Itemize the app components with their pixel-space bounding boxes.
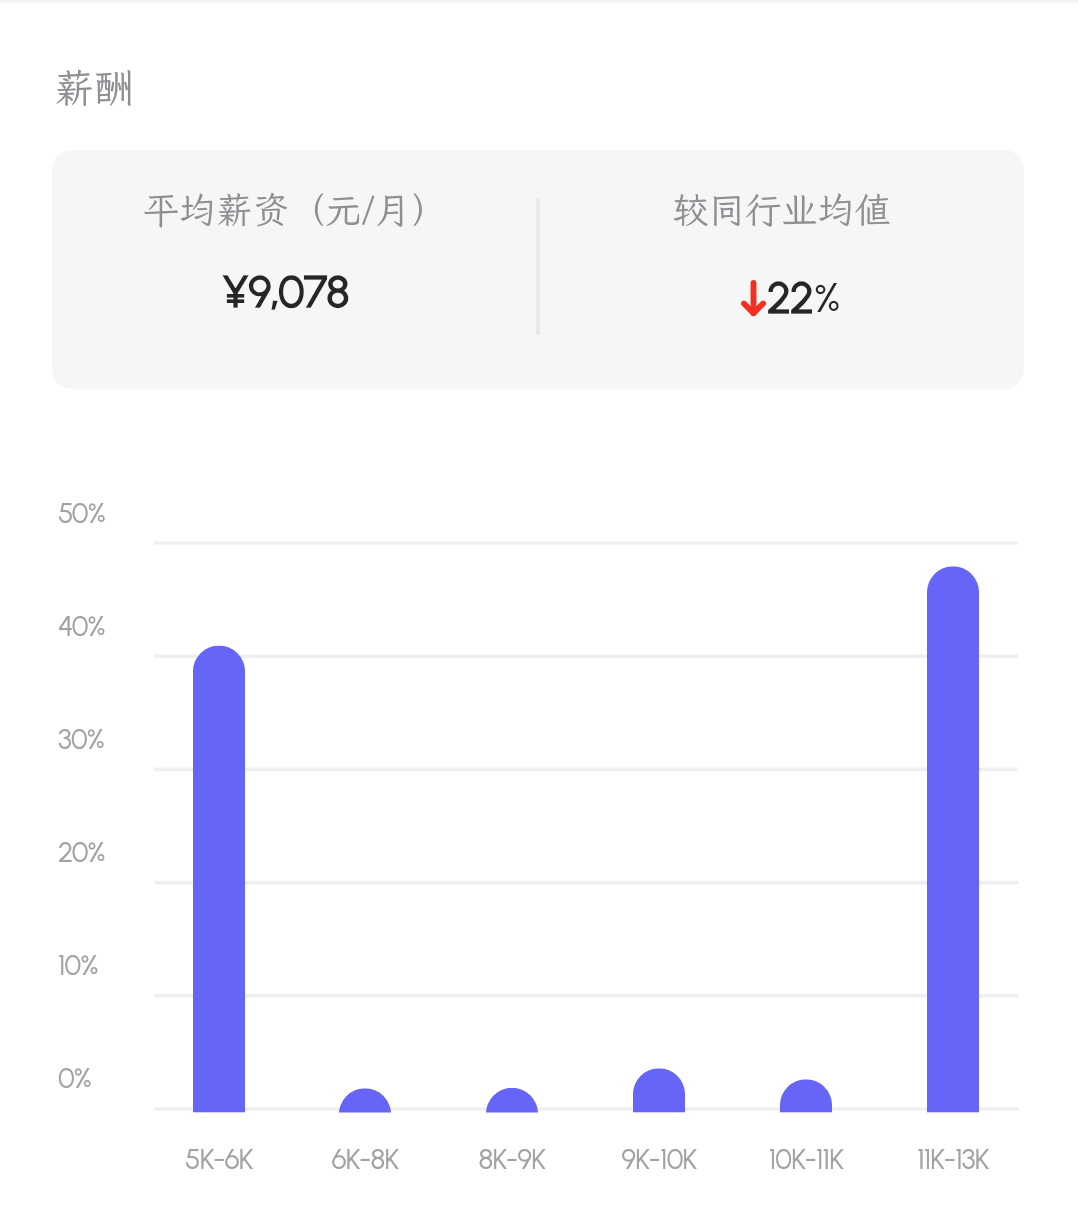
staticText: 40%: [58, 609, 105, 643]
staticText: 薪酬: [54, 61, 134, 114]
staticText: 10%: [58, 948, 98, 982]
other: Decrease: [741, 280, 766, 316]
staticText: 6K-8K: [270, 1142, 460, 1176]
staticText: 9K-10K: [564, 1142, 754, 1176]
staticText: 5K-6K: [124, 1142, 314, 1176]
staticText: 20%: [58, 835, 105, 869]
staticText: 11K-13K: [858, 1142, 1048, 1176]
staticText: %: [814, 273, 840, 322]
staticText: ¥9,078: [222, 265, 349, 318]
staticText: 较同行业均值: [672, 185, 891, 229]
staticText: 50%: [58, 496, 105, 530]
staticText: 10K-11K: [711, 1142, 901, 1176]
staticText: 0%: [58, 1061, 92, 1095]
staticText: 22: [767, 271, 814, 324]
button[interactable]: 薪酬: [54, 59, 134, 115]
button[interactable]: 平均薪资（元/月）: [52, 150, 1024, 389]
staticText: 30%: [58, 722, 104, 756]
staticText: 平均薪资（元/月）: [143, 185, 448, 229]
staticText: 8K-9K: [417, 1142, 607, 1176]
